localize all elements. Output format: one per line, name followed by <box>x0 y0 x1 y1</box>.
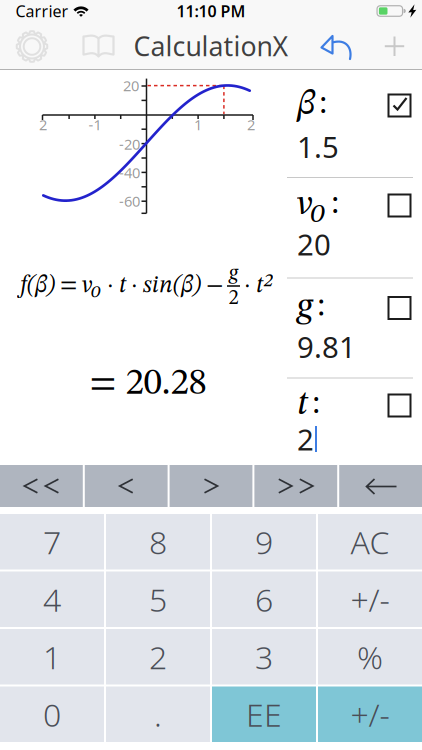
staticText: +/- <box>350 578 389 620</box>
staticText: 1.5 <box>297 127 339 166</box>
staticText: 4 <box>43 578 61 620</box>
staticText: t <box>297 386 308 422</box>
button[interactable]: EE <box>212 686 316 742</box>
button[interactable]: 8 <box>106 514 210 569</box>
staticText: : <box>312 388 320 420</box>
button[interactable]: Library <box>0 0 422 750</box>
button[interactable]: Value of v₀ <box>297 224 331 263</box>
staticText: 9.81 <box>297 327 356 366</box>
button[interactable]: Move to end <box>254 465 337 507</box>
staticText: -20 <box>119 134 140 154</box>
staticText: -1 <box>88 115 101 134</box>
staticText: 20 <box>297 224 331 263</box>
staticText: : <box>331 188 339 220</box>
staticText: 9 <box>255 520 273 563</box>
button[interactable]: 4 <box>0 571 104 627</box>
button[interactable]: Plot t <box>0 0 422 750</box>
staticText: · t² <box>244 274 272 298</box>
staticText: Carrier <box>15 0 68 22</box>
staticText: g <box>297 289 313 325</box>
staticText: 5 <box>149 578 167 620</box>
staticText: . <box>154 693 162 735</box>
staticText: 1 <box>43 635 61 678</box>
staticText: g <box>229 263 238 284</box>
staticText: 6 <box>255 578 273 620</box>
button[interactable]: Add <box>0 0 422 750</box>
button[interactable]: AC <box>318 514 422 569</box>
button[interactable]: 6 <box>212 571 316 627</box>
staticText: % <box>357 635 383 678</box>
button[interactable]: Delete <box>339 465 422 507</box>
staticText: -60 <box>119 191 140 211</box>
button[interactable]: Value of g <box>297 327 356 366</box>
button[interactable]: 7 <box>0 514 104 569</box>
staticText: f(β) = v₀ · t · sin(β) − <box>20 274 223 298</box>
staticText: 1 <box>194 115 202 134</box>
button[interactable]: 1 <box>0 629 104 684</box>
button[interactable]: Move left <box>85 465 168 507</box>
staticText: : <box>317 291 325 323</box>
button[interactable]: 2 <box>106 629 210 684</box>
staticText: 3 <box>255 635 273 678</box>
button[interactable]: % <box>318 629 422 684</box>
button[interactable]: Value of t <box>297 419 317 458</box>
staticText: : <box>319 88 327 120</box>
button[interactable]: 9 <box>212 514 316 569</box>
staticText: 2 <box>297 419 314 458</box>
button[interactable]: Move right <box>170 465 252 507</box>
staticText: +/- <box>350 693 389 735</box>
button[interactable]: Undo <box>0 0 422 750</box>
staticText: 11:10 PM <box>176 0 245 22</box>
staticText: 2 <box>228 288 238 309</box>
button[interactable]: Value of β <box>297 127 339 166</box>
staticText: 2 <box>149 635 167 678</box>
staticText: 20 <box>123 76 139 95</box>
button[interactable]: +/- <box>318 686 422 742</box>
button[interactable]: 0 <box>0 686 104 742</box>
button[interactable]: Move to start <box>0 465 83 507</box>
button[interactable]: Plot β <box>0 0 422 750</box>
button[interactable]: Settings <box>0 0 422 750</box>
staticText: AC <box>350 520 389 563</box>
staticText: 2 <box>39 115 47 134</box>
staticText: -40 <box>119 163 140 182</box>
staticText: 0 <box>43 693 61 735</box>
staticText: β <box>297 86 315 122</box>
staticText: 7 <box>43 520 61 563</box>
staticText: CalculationX <box>133 28 288 64</box>
staticText: = 20.28 <box>89 365 206 403</box>
staticText: v₀ <box>297 186 327 222</box>
staticText: 2 <box>247 115 255 134</box>
button[interactable]: 3 <box>212 629 316 684</box>
button[interactable]: Plot v₀ <box>0 0 422 750</box>
staticText: EE <box>246 693 282 735</box>
button[interactable]: +/- <box>318 571 422 627</box>
staticText: 8 <box>149 520 167 563</box>
button[interactable]: Plot g <box>0 0 422 750</box>
button[interactable]: . <box>106 686 210 742</box>
button[interactable]: 5 <box>106 571 210 627</box>
